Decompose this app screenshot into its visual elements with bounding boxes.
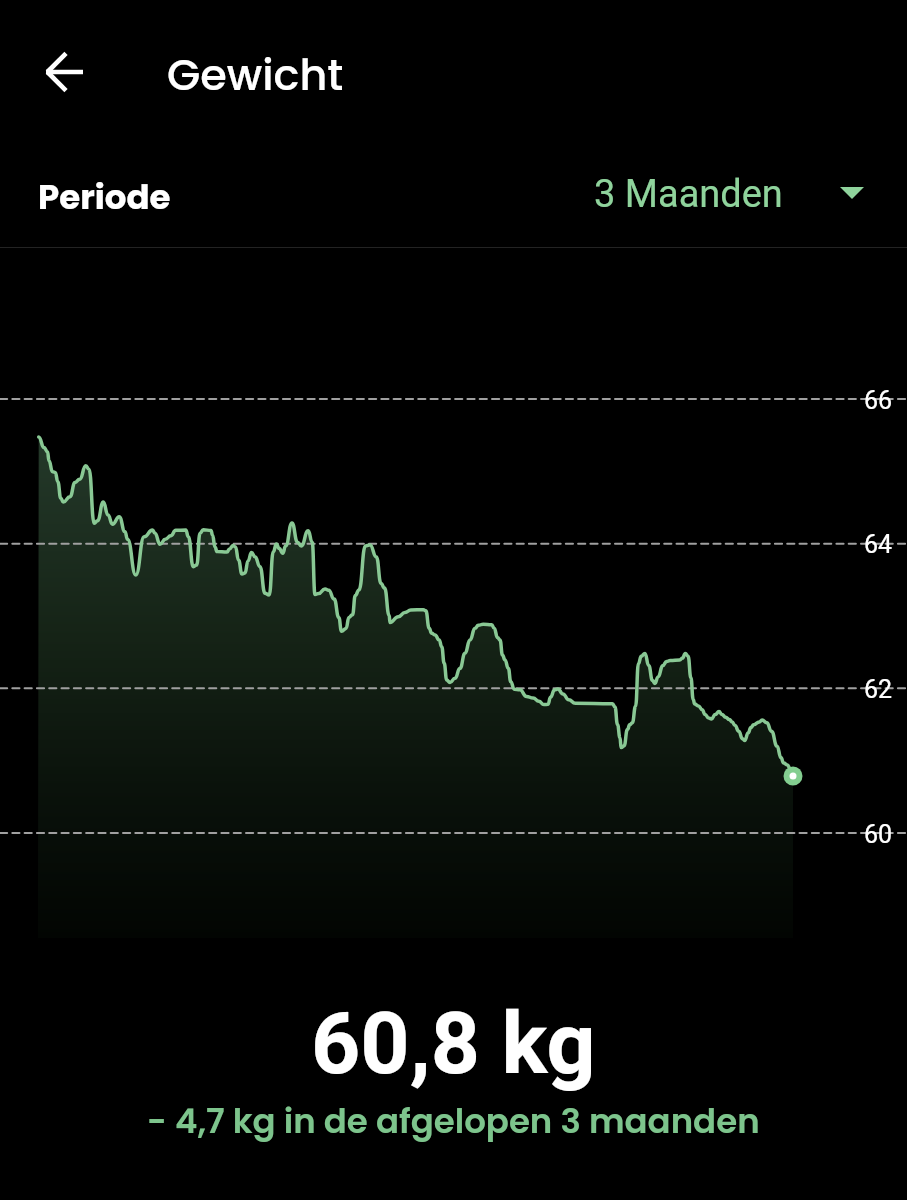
staticText: - 4,7 kg in de afgelopen 3 maanden: [147, 1097, 760, 1145]
staticText: 3 Maanden: [594, 172, 783, 217]
staticText: 60: [864, 820, 893, 849]
button[interactable]: Periode: [0, 148, 907, 247]
button[interactable]: Back: [30, 38, 98, 106]
staticText: Gewicht: [167, 45, 344, 105]
staticText: 64: [864, 530, 893, 559]
staticText: 66: [864, 386, 893, 415]
staticText: 60,8 kg: [311, 993, 596, 1094]
staticText: 62: [864, 675, 893, 704]
staticText: Periode: [38, 173, 171, 221]
